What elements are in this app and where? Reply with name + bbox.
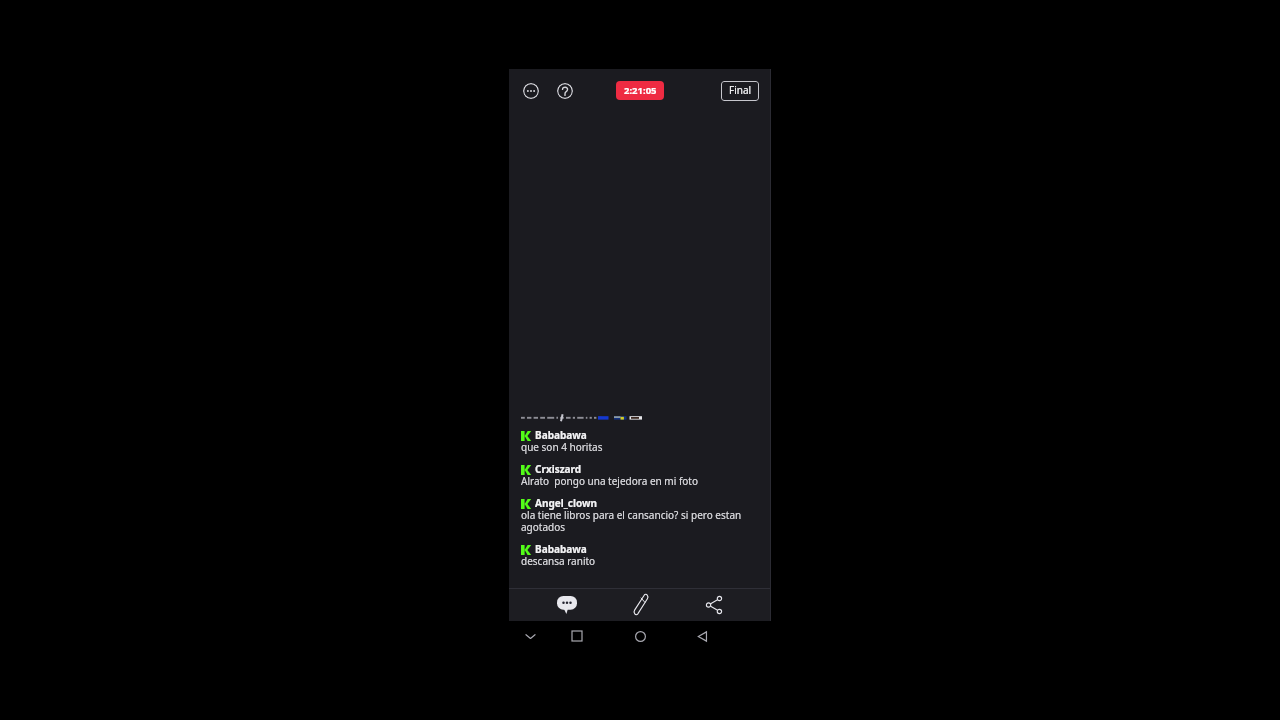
button[interactable]: Final [721, 81, 759, 101]
staticText: Angel_clown [535, 498, 598, 510]
button[interactable]: Help [557, 83, 573, 99]
button[interactable]: Edit [605, 589, 677, 621]
button[interactable]: Hide keyboard [520, 626, 540, 646]
staticText: Bababawa [535, 544, 587, 556]
button[interactable]: Crxiszard [509, 463, 771, 488]
button[interactable]: 2:21:05 [616, 81, 664, 100]
button[interactable]: Angel_clown [509, 497, 771, 534]
staticText: Alrato pongo una tejedora en mi foto [521, 476, 699, 488]
button[interactable]: Home [629, 625, 651, 647]
button[interactable]: More options [523, 83, 539, 99]
staticText: descansa ranito [521, 556, 596, 568]
button[interactable]: Chat [529, 589, 605, 621]
staticText: Final [729, 85, 752, 97]
button[interactable]: Recent apps [566, 625, 588, 647]
staticText: Bababawa [535, 430, 587, 442]
staticText: Crxiszard [535, 464, 582, 476]
staticText: que son 4 horitas [521, 442, 603, 454]
button[interactable]: Bababawa [509, 543, 771, 568]
button[interactable]: Share [678, 589, 750, 621]
staticText: ola tiene libros para el cansancio? si p… [521, 510, 742, 522]
staticText: agotados [521, 522, 566, 534]
button[interactable]: Back [691, 625, 713, 647]
button[interactable]: Bababawa [509, 429, 771, 454]
staticText: 2:21:05 [624, 85, 657, 96]
